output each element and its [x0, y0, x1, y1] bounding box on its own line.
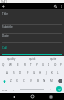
staticText: quick: [29, 57, 36, 61]
button[interactable]: More options: [58, 3, 64, 9]
button[interactable]: I: [46, 61, 52, 69]
button[interactable]: ?123: [0, 85, 10, 93]
staticText: ,: [13, 87, 14, 91]
button[interactable]: A: [3, 69, 10, 77]
button[interactable]: ,: [10, 85, 17, 93]
staticText: Date: [2, 34, 9, 38]
button[interactable]: H: [37, 69, 43, 77]
staticText: W: [9, 63, 12, 67]
button[interactable]: Q: [0, 61, 7, 69]
staticText: Call: [2, 46, 8, 50]
button[interactable]: R: [21, 61, 28, 69]
button[interactable]: Space: [17, 85, 47, 93]
button[interactable]: Call: [0, 46, 64, 55]
button[interactable]: S: [10, 69, 17, 77]
staticText: I: [48, 63, 50, 67]
button[interactable]: Subtitle: [0, 25, 64, 34]
button[interactable]: quite: [43, 56, 64, 61]
staticText: K: [51, 71, 53, 75]
button[interactable]: X: [14, 77, 20, 85]
button[interactable]: Home: [27, 93, 37, 100]
staticText: Y: [36, 63, 38, 67]
staticText: D: [19, 71, 22, 75]
button[interactable]: Z: [8, 77, 14, 85]
button[interactable]: Title: [0, 12, 64, 25]
button[interactable]: Backspace: [55, 77, 64, 85]
button[interactable]: Date: [0, 34, 64, 43]
button[interactable]: G: [31, 69, 37, 77]
staticText: Title: [2, 12, 8, 16]
button[interactable]: K: [49, 69, 55, 77]
button[interactable]: D: [17, 69, 24, 77]
staticText: .: [50, 87, 51, 91]
staticText: G: [33, 71, 36, 75]
staticText: ?123: [2, 88, 8, 91]
staticText: M: [50, 79, 53, 83]
button[interactable]: M: [48, 77, 55, 85]
staticText: Z: [10, 79, 12, 83]
button[interactable]: J: [43, 69, 49, 77]
staticText: J: [46, 71, 47, 75]
button[interactable]: Recents: [46, 93, 56, 100]
staticText: V: [30, 79, 32, 83]
button[interactable]: quality: [0, 56, 22, 61]
staticText: A: [6, 71, 8, 75]
button[interactable]: quick: [22, 56, 43, 61]
button[interactable]: Enter: [56, 86, 62, 92]
staticText: Subtitle: [2, 25, 13, 29]
staticText: X: [16, 79, 18, 83]
staticText: B: [37, 79, 39, 83]
button[interactable]: O: [52, 61, 58, 69]
button[interactable]: C: [20, 77, 27, 85]
staticText: 9:41: [1, 0, 7, 3]
staticText: Q: [2, 63, 5, 67]
button[interactable]: E: [14, 61, 21, 69]
button[interactable]: V: [27, 77, 34, 85]
staticText: S: [13, 71, 15, 75]
staticText: F: [27, 71, 29, 75]
staticText: R: [24, 63, 26, 67]
button[interactable]: Shift: [0, 77, 8, 85]
button[interactable]: N: [41, 77, 48, 85]
button[interactable]: Back: [0, 3, 6, 9]
staticText: C: [23, 79, 25, 83]
button[interactable]: L: [55, 69, 61, 77]
staticText: quality: [7, 57, 16, 61]
staticText: T: [30, 63, 32, 67]
button[interactable]: U: [40, 61, 46, 69]
button[interactable]: Y: [34, 61, 40, 69]
button[interactable]: B: [34, 77, 41, 85]
button[interactable]: P: [58, 61, 64, 69]
button[interactable]: Back: [9, 93, 19, 100]
staticText: P: [60, 63, 62, 67]
button[interactable]: Search: [52, 3, 58, 9]
staticText: H: [39, 71, 42, 75]
button[interactable]: W: [7, 61, 14, 69]
staticText: quite: [50, 57, 57, 61]
button[interactable]: T: [28, 61, 34, 69]
staticText: L: [57, 71, 59, 75]
button[interactable]: F: [24, 69, 31, 77]
staticText: E: [17, 63, 19, 67]
staticText: U: [42, 63, 45, 67]
staticText: O: [54, 63, 57, 67]
staticText: N: [43, 79, 46, 83]
